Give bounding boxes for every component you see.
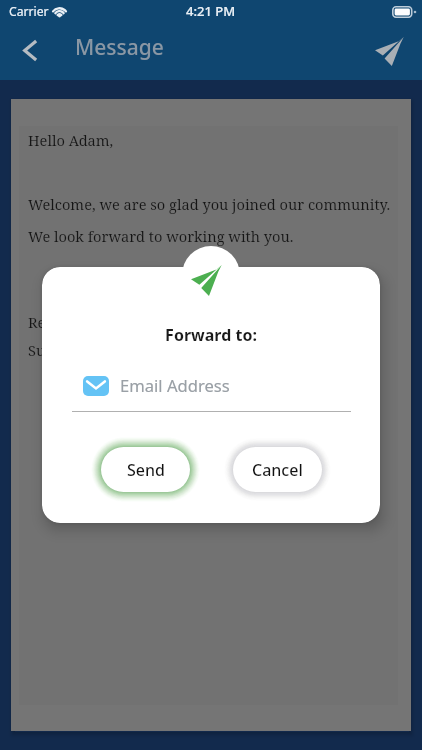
button[interactable]: Cancel xyxy=(225,439,330,500)
staticText: Hello Adam, xyxy=(28,130,114,150)
staticText: We look forward to working with you. xyxy=(28,226,294,246)
staticText: Carrier xyxy=(9,3,49,20)
button[interactable]: Send xyxy=(368,28,412,72)
button[interactable]: Back xyxy=(6,28,54,72)
staticText: Support Team xyxy=(28,340,126,360)
staticText: Cancel xyxy=(252,459,303,481)
staticText: Regards, xyxy=(28,312,88,332)
button[interactable]: Send xyxy=(93,439,198,500)
staticText: Welcome, we are so glad you joined our c… xyxy=(28,194,391,214)
staticText: 4:21 PM xyxy=(186,2,236,20)
staticText: Message xyxy=(75,33,164,62)
staticText: Send xyxy=(127,459,165,481)
staticText: Forward to: xyxy=(42,324,380,346)
staticText: Email Address xyxy=(120,374,230,397)
